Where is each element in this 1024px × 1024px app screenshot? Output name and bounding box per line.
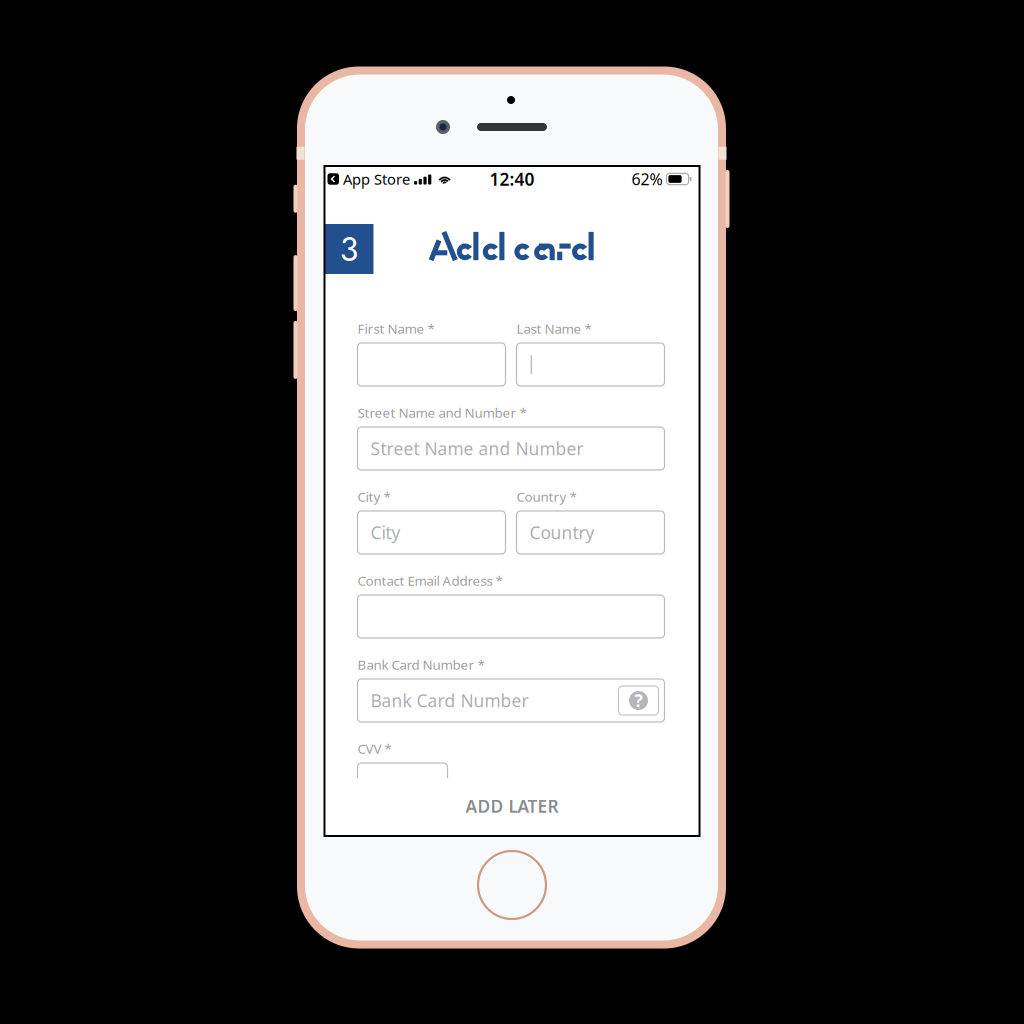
button[interactable]: ADD LATER bbox=[326, 778, 697, 834]
button[interactable]: Card number help bbox=[618, 686, 658, 715]
staticText: Street Name and Number * bbox=[357, 404, 526, 421]
staticText: 3 bbox=[339, 224, 358, 274]
staticText: 12:40 bbox=[489, 167, 534, 190]
staticText: Country bbox=[529, 521, 594, 544]
staticText: Contact Email Address * bbox=[357, 572, 502, 589]
button[interactable] bbox=[357, 595, 664, 638]
button[interactable]: Street Name and Number bbox=[357, 427, 664, 470]
staticText: Bank Card Number bbox=[370, 689, 528, 712]
button[interactable]: Bank Card Number bbox=[357, 679, 664, 722]
staticText: CVV * bbox=[357, 740, 391, 757]
button[interactable] bbox=[516, 343, 664, 386]
button[interactable] bbox=[357, 763, 447, 806]
button[interactable]: Step 3 bbox=[324, 224, 373, 274]
staticText: Last Name * bbox=[516, 320, 591, 337]
staticText: City * bbox=[357, 488, 390, 505]
staticText: Street Name and Number bbox=[370, 437, 583, 460]
staticText: 62% bbox=[632, 168, 663, 190]
staticText: First Name * bbox=[357, 320, 434, 337]
button[interactable]: Country bbox=[516, 511, 664, 554]
button[interactable]: City bbox=[357, 511, 505, 554]
staticText: ADD LATER bbox=[465, 794, 558, 817]
staticText: App Store bbox=[343, 169, 410, 189]
staticText: ? bbox=[634, 689, 642, 712]
button[interactable] bbox=[357, 343, 505, 386]
staticText: Bank Card Number * bbox=[357, 656, 484, 673]
staticText: City bbox=[370, 521, 400, 544]
button[interactable]: App Store bbox=[327, 169, 410, 189]
staticText: Country * bbox=[516, 488, 576, 505]
